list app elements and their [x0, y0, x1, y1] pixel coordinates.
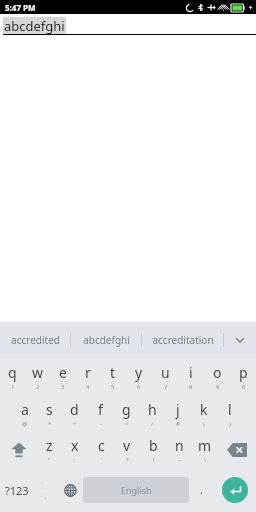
button[interactable]: Change language [58, 468, 83, 512]
staticText: 8 [189, 383, 193, 391]
staticText: 2 [36, 383, 40, 391]
staticText: ~ [178, 456, 182, 464]
staticText: ( [203, 420, 205, 428]
button[interactable]: r [75, 358, 100, 395]
button[interactable]: f [87, 395, 113, 432]
staticText: e [59, 363, 67, 382]
staticText: = [125, 420, 129, 428]
staticText: 4 [86, 383, 90, 391]
staticText: # [176, 420, 180, 428]
button[interactable]: b [140, 432, 166, 468]
staticText: ' [101, 456, 103, 464]
staticText: t [110, 363, 116, 382]
staticText: s [46, 400, 53, 419]
staticText: ) [229, 420, 231, 428]
staticText: v [123, 436, 131, 455]
button[interactable]: Enter [214, 468, 256, 512]
button[interactable]: ?123 [0, 468, 33, 512]
staticText: i [189, 363, 193, 382]
staticText: 1 [11, 383, 15, 391]
staticText: h [148, 400, 157, 419]
button[interactable]: Backspace [218, 432, 256, 468]
staticText: b [149, 436, 158, 455]
staticText: m [198, 436, 212, 455]
staticText: English [121, 484, 152, 496]
button[interactable]: p [230, 358, 256, 395]
staticText: f [98, 400, 103, 419]
button[interactable]: o [204, 358, 230, 395]
button[interactable]: x [62, 432, 88, 468]
staticText: + [73, 420, 77, 428]
button[interactable]: a [12, 395, 37, 432]
staticText: l [228, 400, 232, 419]
button[interactable]: m [192, 432, 218, 468]
button[interactable]: y [126, 358, 152, 395]
staticText: / [151, 420, 154, 428]
staticText: y [135, 363, 143, 382]
button[interactable]: English [83, 477, 189, 503]
button[interactable]: d [62, 395, 87, 432]
staticText: " [48, 456, 51, 464]
staticText: w [32, 363, 44, 382]
staticText: j [176, 400, 180, 419]
button[interactable]: z [37, 432, 62, 468]
button[interactable]: i [178, 358, 204, 395]
staticText: g [122, 400, 131, 419]
staticText: - [100, 420, 102, 428]
staticText: accreditation [152, 333, 214, 347]
button[interactable]: q [0, 358, 25, 395]
staticText: ? [126, 456, 129, 464]
staticText: x [71, 436, 79, 455]
staticText: * [48, 420, 52, 428]
button[interactable]: n [166, 432, 192, 468]
staticText: z [46, 436, 53, 455]
staticText: accredited [11, 333, 60, 347]
button[interactable]: g [113, 395, 139, 432]
button[interactable]: Shift [0, 432, 37, 468]
staticText: k [200, 400, 208, 419]
staticText: @ [22, 420, 28, 428]
button[interactable]: h [139, 395, 165, 432]
staticText: o [213, 363, 222, 382]
button[interactable]: e [50, 358, 75, 395]
button[interactable]: s [37, 395, 62, 432]
button[interactable]: w [25, 358, 50, 395]
staticText: 5 [111, 383, 115, 391]
staticText: u [161, 363, 170, 382]
button[interactable]: accredited [0, 322, 70, 358]
button[interactable]: accreditation [142, 322, 223, 358]
staticText: ?123 [5, 483, 29, 498]
staticText: r [85, 363, 91, 382]
staticText: , [45, 493, 47, 501]
staticText: p [239, 363, 248, 382]
button[interactable]: c [88, 432, 114, 468]
staticText: 7 [164, 383, 168, 391]
button[interactable]: More suggestions [224, 322, 256, 358]
button[interactable]: k [191, 395, 217, 432]
staticText: q [8, 363, 17, 382]
staticText: : [74, 456, 76, 464]
staticText: . [200, 483, 203, 497]
staticText: c [98, 436, 105, 455]
staticText: 9 [216, 383, 220, 391]
staticText: abcdefghi [4, 17, 65, 35]
staticText: abcdefghi [83, 333, 130, 347]
staticText: a [21, 400, 29, 419]
button[interactable]: j [165, 395, 191, 432]
staticText: ! [153, 456, 155, 464]
staticText: 5:47 PM [5, 2, 36, 13]
button[interactable]: t [100, 358, 126, 395]
staticText: \ [204, 456, 207, 464]
staticText: 0 [242, 383, 246, 391]
button[interactable]: l [217, 395, 243, 432]
staticText: d [70, 400, 79, 419]
button[interactable]: v [114, 432, 140, 468]
button[interactable]: . [189, 468, 214, 512]
button[interactable]: abcdefghi [71, 322, 141, 358]
button[interactable]: u [152, 358, 178, 395]
staticText: n [175, 436, 184, 455]
staticText: 3 [61, 383, 65, 391]
staticText: 6 [137, 383, 141, 391]
